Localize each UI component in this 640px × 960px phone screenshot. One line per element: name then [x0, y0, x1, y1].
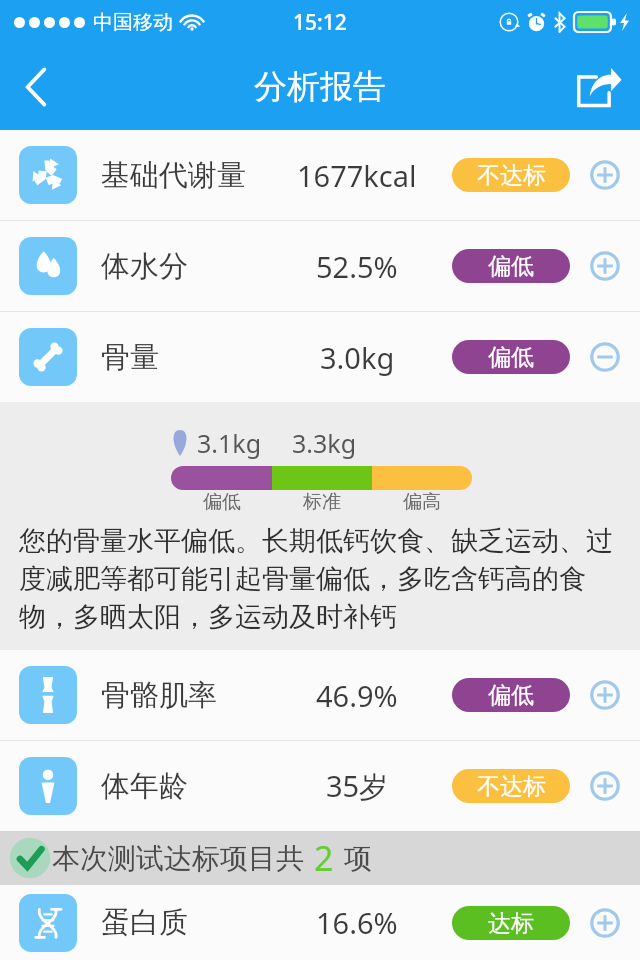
staticText: 基础代谢量: [101, 157, 246, 194]
button[interactable]: Expand: [570, 221, 640, 311]
button[interactable]: 骨骼肌率: [0, 650, 640, 740]
staticText: 偏低: [488, 343, 534, 372]
button[interactable]: Expand: [570, 885, 640, 960]
staticText: 35岁: [326, 766, 389, 806]
button[interactable]: Share: [558, 44, 640, 130]
staticText: 1677kcal: [297, 156, 417, 195]
staticText: 偏高: [403, 490, 441, 514]
button[interactable]: Collapse: [570, 312, 640, 402]
staticText: 3.0kg: [320, 338, 395, 377]
button[interactable]: 基础代谢量: [0, 130, 640, 220]
staticText: 2: [314, 835, 334, 881]
button[interactable]: 蛋白质: [0, 885, 640, 960]
staticText: 偏低: [488, 252, 534, 281]
staticText: 分析报告: [254, 66, 386, 108]
button[interactable]: 骨量: [0, 312, 640, 402]
staticText: 骨量: [101, 339, 159, 376]
staticText: 3.3kg: [292, 426, 357, 460]
staticText: 体水分: [101, 248, 188, 285]
staticText: 52.5%: [316, 247, 398, 286]
staticText: 15:12: [293, 8, 347, 37]
button[interactable]: Expand: [570, 741, 640, 831]
staticText: 体年龄: [101, 768, 188, 805]
button[interactable]: 体年龄: [0, 741, 640, 831]
staticText: 不达标: [477, 161, 546, 190]
button[interactable]: Back: [0, 44, 72, 130]
staticText: 蛋白质: [101, 904, 188, 941]
staticText: 16.6%: [316, 903, 398, 942]
staticText: 偏低: [203, 490, 241, 514]
staticText: 您的骨量水平偏低。长期低钙饮食、缺乏运动、过度减肥等都可能引起骨量偏低，多吃含钙…: [19, 524, 621, 634]
staticText: 项: [344, 841, 372, 876]
staticText: 偏低: [488, 681, 534, 710]
staticText: 骨骼肌率: [101, 677, 217, 714]
button[interactable]: 体水分: [0, 221, 640, 311]
staticText: 本次测试达标项目共: [52, 841, 304, 876]
staticText: 达标: [488, 909, 534, 938]
button[interactable]: Expand: [570, 650, 640, 740]
staticText: 不达标: [477, 772, 546, 801]
staticText: 46.9%: [316, 676, 398, 715]
staticText: 3.1kg: [197, 426, 262, 460]
staticText: 中国移动: [93, 10, 173, 35]
staticText: 标准: [303, 490, 341, 514]
button[interactable]: Expand: [570, 130, 640, 220]
